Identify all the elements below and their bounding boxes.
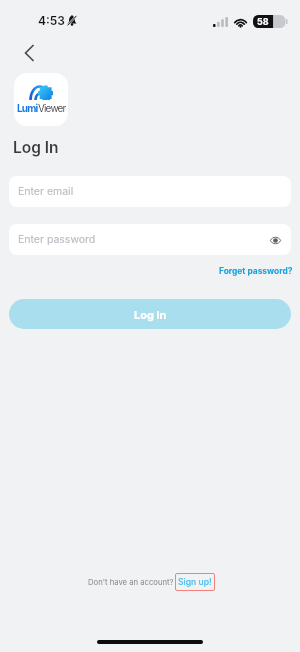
staticText: Forget password? [219, 266, 293, 276]
button[interactable]: Show password [267, 232, 283, 248]
staticText: Log In [134, 308, 167, 321]
staticText: 58 [257, 16, 269, 27]
staticText: Enter password [18, 233, 96, 246]
button[interactable]: Sign up! [175, 573, 215, 591]
staticText: 4:53 [38, 13, 65, 28]
button[interactable]: Forget password? [219, 266, 293, 276]
staticText: Don't have an account? [88, 578, 174, 587]
staticText: Sign up! [178, 577, 212, 587]
staticText: Lumi [17, 102, 38, 114]
button[interactable]: Back [12, 36, 46, 70]
button[interactable]: Enter email [9, 176, 291, 207]
button[interactable]: Enter password [9, 224, 291, 255]
staticText: Log In [13, 138, 59, 157]
button[interactable]: Log In [9, 299, 291, 329]
staticText: Enter email [18, 185, 74, 198]
staticText: Viewer [38, 102, 66, 114]
